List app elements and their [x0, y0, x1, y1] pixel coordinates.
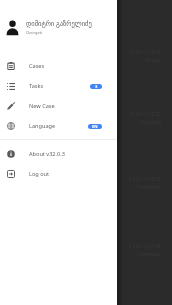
- button[interactable]: 21-03-19 02:05: [0, 152, 172, 214]
- staticText: დიმიტრი გაზრელიძე: [26, 19, 92, 28]
- staticText: Log out: [29, 170, 50, 178]
- button[interactable]: Language: [0, 116, 117, 136]
- staticText: EN: [92, 124, 98, 129]
- button[interactable]: Log out: [0, 164, 117, 184]
- button[interactable]: Tasks: [0, 76, 117, 96]
- button[interactable]: 21-03-19 01:44: [0, 219, 172, 281]
- staticText: New Case: [29, 102, 55, 110]
- staticText: Tasks: [29, 82, 44, 90]
- button[interactable]: დიმიტრი გაზრელიძე: [0, 0, 117, 44]
- staticText: 3: [95, 84, 98, 89]
- button[interactable]: 03-04-19 15:07: [0, 25, 172, 87]
- staticText: Cases: [29, 62, 45, 70]
- button[interactable]: New Case: [0, 96, 117, 116]
- button[interactable]: Cases: [0, 56, 117, 76]
- button[interactable]: About v32.0.3: [0, 144, 117, 164]
- staticText: About v32.0.3: [29, 150, 65, 158]
- staticText: Language: [29, 122, 56, 130]
- button[interactable]: 03-04-19 12:20: [0, 87, 172, 149]
- staticText: Ozurgeti: [26, 30, 43, 35]
